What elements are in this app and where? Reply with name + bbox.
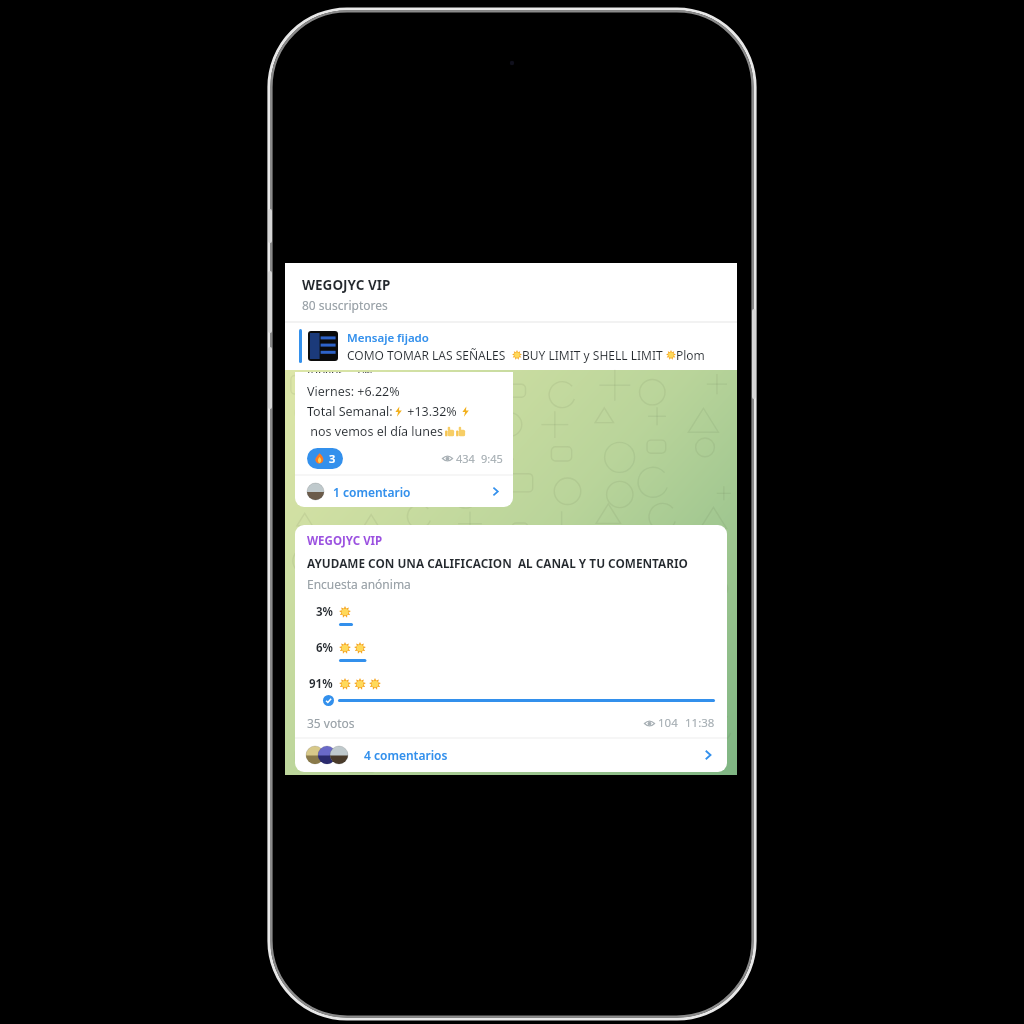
staticText: 80 suscriptores — [302, 297, 388, 313]
staticText: nos vemos el día lunes — [307, 423, 444, 440]
button[interactable]: 3 — [307, 448, 343, 469]
staticText: Viernes: +6.22% — [307, 383, 400, 400]
staticText: 9:45 — [481, 451, 503, 466]
staticText: 104 — [658, 715, 678, 731]
staticText: 6% — [316, 640, 333, 656]
other: Open comments — [701, 748, 715, 762]
other: Views — [442, 453, 453, 464]
staticText: 35 votos — [307, 715, 355, 731]
staticText: 1 comentario — [333, 484, 411, 500]
button[interactable]: 6% — [307, 640, 715, 662]
other: Views — [644, 718, 655, 729]
staticText: WEGOJYC VIP — [302, 276, 391, 294]
button[interactable]: 91% — [307, 676, 715, 706]
staticText: 11:38 — [685, 715, 715, 731]
button[interactable]: 3% — [307, 604, 715, 626]
button[interactable]: 4 comentarios — [295, 739, 727, 772]
staticText: Total Semanal: — [307, 403, 393, 420]
staticText: Mensaje fijado — [347, 330, 429, 346]
button[interactable]: 1 comentario — [295, 476, 513, 507]
other: Open comments — [489, 485, 502, 498]
staticText: 4 comentarios — [364, 747, 448, 763]
staticText: COMO TOMAR LAS SEÑALES — [347, 347, 512, 363]
staticText: Plom — [676, 347, 705, 363]
staticText: +13.32% — [404, 403, 460, 420]
button[interactable]: Mensaje fijado — [285, 322, 737, 370]
button[interactable]: WEGOJYC VIP — [285, 263, 737, 322]
staticText: Jueves: -1% — [307, 372, 373, 373]
staticText: BUY LIMIT y SHELL LIMIT — [522, 347, 666, 363]
staticText: 3 — [329, 451, 336, 466]
staticText: WEGOJYC VIP — [307, 533, 383, 549]
staticText: 91% — [309, 676, 333, 692]
staticText: Encuesta anónima — [307, 576, 411, 592]
staticText: 3% — [316, 604, 333, 620]
staticText: AYUDAME CON UNA CALIFICACION AL CANAL Y … — [307, 555, 688, 571]
staticText: 434 — [456, 451, 475, 466]
